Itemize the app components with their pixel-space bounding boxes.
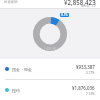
staticText: 総資産額 [4,0,18,4]
staticText: 預金・現金 [12,67,32,72]
button[interactable]: 投信 [0,80,100,100]
staticText: 前日比 [81,4,90,8]
staticText: ¥933,387 [76,64,95,70]
staticText: 投信 [12,88,20,93]
button[interactable]: 預金・現金 [0,59,100,79]
staticText: 1,876,036 [44,47,57,51]
staticText: 8.1% [61,13,68,17]
button[interactable]: 総資産額 [0,0,100,8]
staticText: 7.13% [86,92,95,96]
staticText: +0 [92,4,96,8]
staticText: ¥2,858,423 [64,0,96,6]
staticText: ¥1,876,036 [72,85,95,91]
staticText: 3.17% [86,71,95,75]
button[interactable]: 資産構成の円グラフ [0,9,100,59]
